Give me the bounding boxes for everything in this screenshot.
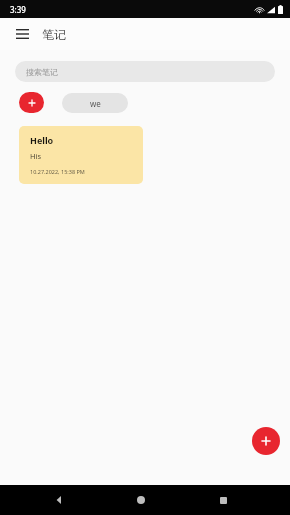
- button[interactable]: Hello: [19, 126, 143, 184]
- staticText: 笔记: [42, 27, 66, 42]
- button[interactable]: Add tag: [19, 92, 44, 113]
- button[interactable]: New note: [252, 427, 280, 455]
- button[interactable]: Back: [46, 487, 72, 513]
- staticText: Hello: [30, 134, 54, 146]
- button[interactable]: Open navigation menu: [10, 22, 34, 46]
- button[interactable]: Home: [128, 487, 154, 513]
- staticText: 10.27.2022, 15:38 PM: [30, 168, 85, 175]
- button[interactable]: we: [62, 93, 128, 113]
- staticText: 3:39: [10, 4, 26, 15]
- button[interactable]: Recent apps: [210, 487, 236, 513]
- staticText: His: [30, 151, 42, 161]
- staticText: we: [90, 98, 101, 109]
- staticText: 搜索笔记: [26, 67, 58, 77]
- button[interactable]: 搜索笔记: [15, 61, 275, 82]
